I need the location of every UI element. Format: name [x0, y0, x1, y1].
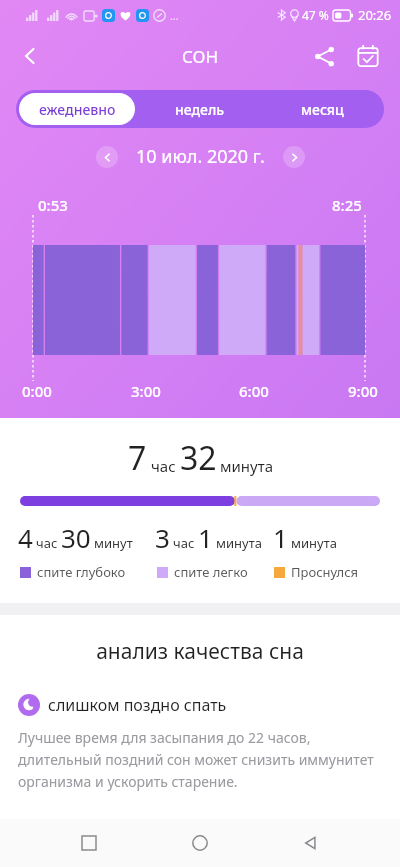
staticText: Лучшее время для засыпания до 22 часов, …	[18, 728, 374, 791]
button[interactable]: месяц	[264, 93, 381, 125]
staticText: месяц	[301, 100, 344, 119]
staticText: анализ качества сна	[0, 637, 400, 666]
staticText: спите глубоко	[37, 563, 126, 581]
button[interactable]: Share	[302, 34, 346, 78]
staticText: СОН	[182, 45, 219, 68]
staticText: 20:26	[358, 6, 392, 24]
staticText: 9:00	[348, 381, 378, 401]
staticText: недель	[175, 100, 225, 119]
staticText: 4	[18, 520, 33, 555]
staticText: 47 %	[302, 7, 329, 23]
button[interactable]: недель	[141, 93, 258, 125]
staticText: 1	[273, 520, 288, 555]
staticText: 0:53	[38, 195, 68, 215]
staticText: 30	[61, 520, 91, 555]
staticText: спите легко	[174, 563, 248, 581]
staticText: 8:25	[332, 195, 362, 215]
staticText: Проснулся	[291, 563, 358, 581]
staticText: минута	[220, 456, 273, 476]
button[interactable]: Back	[289, 821, 333, 865]
staticText: …	[170, 8, 179, 23]
staticText: 6:00	[239, 381, 269, 401]
staticText: 32	[180, 436, 217, 480]
staticText: 10 июл. 2020 г.	[136, 144, 265, 169]
staticText: час	[151, 456, 176, 476]
staticText: минута	[216, 534, 262, 552]
staticText: 1	[198, 520, 213, 555]
staticText: слишком поздно спать	[48, 694, 227, 716]
staticText: ежедневно	[39, 100, 116, 119]
staticText: минут	[94, 534, 133, 552]
button[interactable]: Next day	[283, 146, 305, 168]
staticText: час	[36, 534, 58, 552]
button[interactable]: Home	[178, 821, 222, 865]
button[interactable]: Calendar	[346, 34, 390, 78]
staticText: минута	[291, 534, 337, 552]
staticText: 3:00	[131, 381, 161, 401]
staticText: 7	[128, 436, 147, 480]
staticText: 0:00	[22, 381, 52, 401]
button[interactable]: ежедневно	[19, 93, 135, 125]
button[interactable]: Recents	[67, 821, 111, 865]
button[interactable]: Previous day	[96, 146, 118, 168]
button[interactable]: Back	[8, 34, 52, 78]
staticText: 3	[155, 520, 170, 555]
staticText: час	[173, 534, 195, 552]
